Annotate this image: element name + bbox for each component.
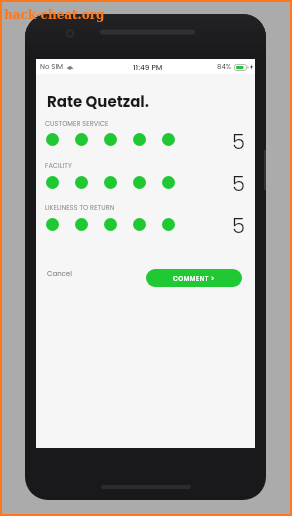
staticText: 5 [232,169,245,198]
button[interactable]: CUSTOMER SERVICE rating 2 [75,133,88,146]
staticText: COMMENT > [173,274,215,283]
button[interactable]: FACILITY rating 3 [104,176,117,189]
button[interactable]: LIKELINESS TO RETURN rating 5 [162,218,175,231]
staticText: CUSTOMER SERVICE [45,119,109,128]
button[interactable]: FACILITY rating 4 [133,176,146,189]
staticText: FACILITY [45,161,72,170]
button[interactable]: CUSTOMER SERVICE rating 3 [104,133,117,146]
staticText: 5 [232,211,245,240]
button[interactable]: Cancel [43,266,76,282]
staticText: 5 [232,127,245,156]
button[interactable]: LIKELINESS TO RETURN rating 1 [46,218,59,231]
staticText: 84% [217,62,232,72]
staticText: LIKELINESS TO RETURN [45,203,115,212]
button[interactable]: CUSTOMER SERVICE rating 5 [162,133,175,146]
button[interactable]: FACILITY rating 5 [162,176,175,189]
staticText: 11:49 PM [133,62,163,72]
button[interactable]: COMMENT > [146,269,242,287]
staticText: hack-cheat.org [4,8,105,22]
button[interactable]: LIKELINESS TO RETURN rating 4 [133,218,146,231]
staticText: Rate Quetzal. [47,91,150,112]
button[interactable]: CUSTOMER SERVICE rating 4 [133,133,146,146]
staticText: No SIM [40,62,64,72]
button[interactable]: FACILITY rating 1 [46,176,59,189]
button[interactable]: FACILITY rating 2 [75,176,88,189]
button[interactable]: CUSTOMER SERVICE rating 1 [46,133,59,146]
staticText: Cancel [47,269,72,279]
button[interactable]: LIKELINESS TO RETURN rating 3 [104,218,117,231]
button[interactable]: LIKELINESS TO RETURN rating 2 [75,218,88,231]
